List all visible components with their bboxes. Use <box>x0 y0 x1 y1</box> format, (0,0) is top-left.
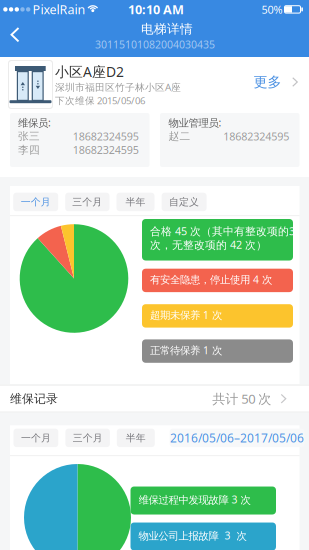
button[interactable]: 18682324595 <box>73 129 139 144</box>
staticText: 一个月 <box>21 432 51 444</box>
button[interactable]: 半年 <box>116 193 154 211</box>
staticText: 次，无整改项的 42 次） <box>150 237 267 252</box>
staticText: 电梯详情 <box>141 21 193 37</box>
staticText: 李四 <box>18 143 40 157</box>
staticText: 维保记录 <box>10 391 58 406</box>
staticText: 张三 <box>18 130 40 143</box>
staticText: 半年 <box>126 432 146 444</box>
staticText: 超期未保养 1 次 <box>150 308 222 322</box>
button[interactable]: 一个月 <box>13 429 58 447</box>
staticText: 赵二 <box>168 130 190 143</box>
staticText: 18682324595 <box>73 129 139 144</box>
staticText: 10:10 AM <box>128 1 184 18</box>
staticText: 30115101082004030435 <box>95 37 215 52</box>
staticText: 深圳市福田区竹子林小区A座 <box>55 80 181 94</box>
button[interactable]: 三个月 <box>65 429 110 447</box>
staticText: 物业管理员: <box>168 115 221 130</box>
button[interactable]: 18682324595 <box>223 129 289 144</box>
button[interactable]: 维保记录 <box>0 385 309 412</box>
staticText: 三个月 <box>72 196 102 208</box>
staticText: 有安全隐患，停止使用 4 次 <box>150 272 272 286</box>
button[interactable]: 半年 <box>117 429 155 447</box>
staticText: 18682324595 <box>73 142 139 157</box>
staticText: 合格 45 次（其中有整改项的3 <box>150 224 295 238</box>
staticText: 一个月 <box>21 196 51 208</box>
staticText: 共计 50 次 <box>212 390 271 408</box>
staticText: 18682324595 <box>223 129 289 144</box>
staticText: 维保过程中发现故障 3 次 <box>138 492 250 507</box>
staticText: 半年 <box>125 196 145 208</box>
button[interactable]: Back <box>0 20 30 50</box>
staticText: 自定义 <box>169 196 199 208</box>
button[interactable]: 更多 <box>241 67 307 97</box>
staticText: 下次维保 2015/05/06 <box>55 94 145 107</box>
staticText: 2016/05/06–2017/05/06 <box>170 430 304 446</box>
button[interactable]: 三个月 <box>65 193 109 211</box>
button[interactable]: 一个月 <box>13 193 58 211</box>
staticText: 小区A座D2 <box>55 62 124 81</box>
staticText: PixelRain <box>32 1 85 18</box>
button[interactable]: 18682324595 <box>73 142 139 157</box>
staticText: 物业公司上报故障 3 次 <box>138 528 246 543</box>
staticText: 维保员: <box>18 115 51 130</box>
button[interactable]: 2016/05/06–2017/05/06 <box>170 429 304 447</box>
staticText: 50% <box>261 2 282 17</box>
button[interactable]: 自定义 <box>162 193 207 211</box>
staticText: 更多 <box>253 73 281 91</box>
staticText: 正常待保养 1 次 <box>150 343 222 357</box>
staticText: 三个月 <box>73 432 103 444</box>
